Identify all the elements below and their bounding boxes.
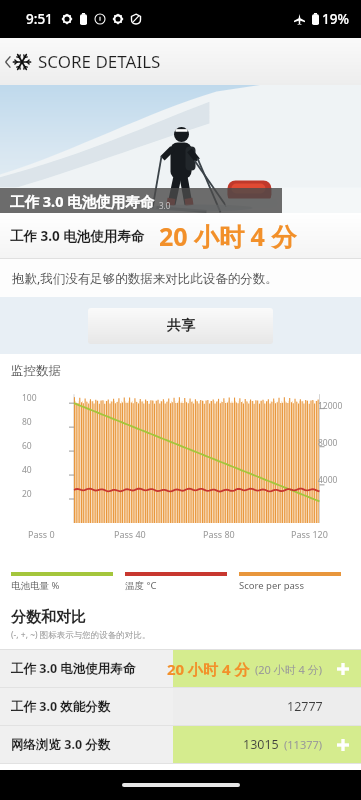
staticText: 20 小时 4 分: [159, 219, 297, 253]
staticText: 8000: [318, 437, 338, 449]
staticText: 3.0: [159, 200, 171, 211]
staticText: 监控数据: [11, 363, 61, 379]
staticText: Pass 0: [28, 528, 55, 540]
staticText: 工作 3.0 电池使用寿命: [11, 660, 136, 677]
staticText: 12777: [287, 698, 323, 715]
button[interactable]: 网络浏览 3.0 分数: [0, 726, 361, 763]
staticText: 19%: [322, 10, 349, 28]
staticText: 共享: [167, 317, 195, 335]
staticText: Pass 80: [203, 528, 235, 540]
staticText: (11377): [284, 737, 323, 752]
staticText: 60: [22, 440, 32, 452]
button[interactable]: 共享: [88, 308, 273, 344]
staticText: 分数和对比: [11, 608, 86, 627]
staticText: 9:51: [26, 10, 53, 28]
staticText: (20 小时 4 分): [255, 662, 323, 677]
staticText: 工作 3.0 电池使用寿命: [10, 227, 145, 245]
staticText: 工作 3.0 效能分数: [11, 698, 111, 715]
staticText: 13015: [243, 736, 279, 753]
staticText: 工作 3.0 电池使用寿命: [10, 191, 155, 211]
button[interactable]: Back to Score Details: [0, 38, 361, 85]
button[interactable]: 工作 3.0 效能分数: [0, 688, 361, 725]
staticText: 80: [22, 416, 32, 428]
staticText: 20: [22, 488, 32, 500]
staticText: 40: [22, 464, 32, 476]
staticText: 12000: [318, 400, 343, 412]
staticText: SCORE DETAILS: [38, 50, 161, 73]
staticText: Score per pass: [239, 579, 304, 592]
staticText: 20 小时 4 分: [167, 659, 250, 679]
button[interactable]: 工作 3.0 电池使用寿命: [0, 650, 361, 687]
staticText: 抱歉,我们没有足够的数据来对比此设备的分数。: [12, 270, 278, 287]
staticText: 温度 °C: [125, 579, 157, 592]
staticText: (-, +, ~) 图标表示与您的设备的对比。: [11, 629, 151, 641]
staticText: 网络浏览 3.0 分数: [11, 736, 111, 753]
staticText: 100: [22, 392, 37, 404]
staticText: 电池电量 %: [11, 579, 60, 592]
staticText: Pass 40: [114, 528, 146, 540]
staticText: Pass 120: [291, 528, 328, 540]
staticText: 4000: [318, 474, 338, 486]
